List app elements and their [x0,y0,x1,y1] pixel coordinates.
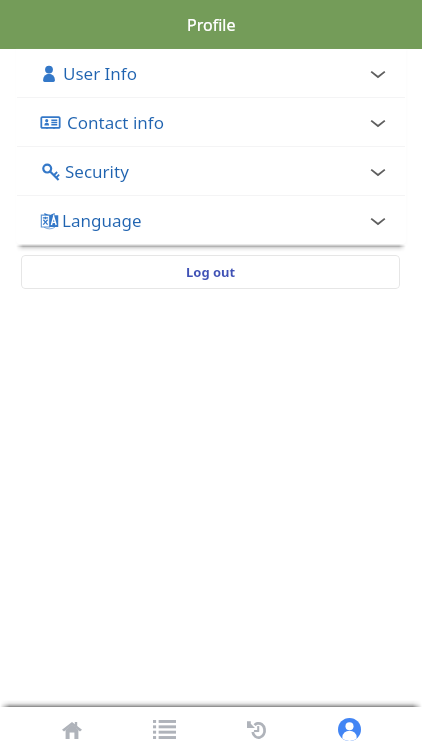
button[interactable]: History [210,707,303,750]
button[interactable]: Log out [21,255,400,289]
button[interactable]: List [118,707,210,750]
staticText: Contact info [67,111,164,134]
button[interactable]: Security [16,147,406,195]
button[interactable]: User Info [16,49,406,97]
button[interactable]: Language [16,196,406,244]
button[interactable]: Contact info [16,98,406,146]
staticText: Security [65,160,129,183]
button[interactable]: Home [26,707,118,750]
staticText: Language [62,209,142,232]
staticText: User Info [63,62,138,85]
staticText: Profile [187,14,236,36]
button[interactable]: Profile [303,707,396,750]
staticText: Log out [186,263,236,281]
